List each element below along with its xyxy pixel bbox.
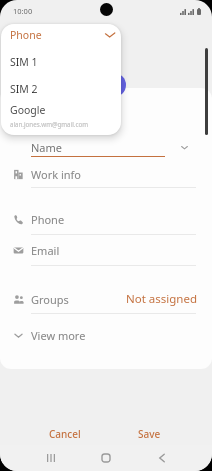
button[interactable]: Recents [40,447,62,469]
button[interactable]: Cancel [22,420,107,448]
button[interactable]: Name [0,139,212,155]
staticText: Email [31,243,60,258]
staticText: Work info [31,167,82,182]
button[interactable]: Home [95,447,117,469]
button[interactable]: View more [0,327,212,343]
staticText: alan.jones.wm@gmail.com [10,120,88,128]
button[interactable]: Groups [0,291,212,307]
staticText: Phone [10,28,42,42]
button[interactable]: Save [107,420,192,448]
staticText: Not assigned [126,291,198,307]
staticText: SIM 1 [10,55,38,69]
staticText: SIM 2 [10,82,38,96]
button[interactable]: Back [151,447,173,469]
button[interactable]: Email [0,242,212,258]
staticText: Google [10,103,46,117]
staticText: Groups [31,292,69,307]
button[interactable]: SIM 2 [1,81,121,97]
staticText: Cancel [49,427,81,441]
staticText: Save [138,427,161,441]
staticText: View more [31,328,86,343]
button[interactable]: Phone [1,27,121,43]
button[interactable]: Work info [0,166,212,182]
staticText: Phone [31,212,65,227]
button[interactable]: Expand name [176,139,192,155]
button[interactable]: Google [1,102,121,129]
button[interactable]: SIM 1 [1,54,121,70]
staticText: Name [31,140,63,155]
staticText: 10:00 [13,6,33,16]
button[interactable]: Phone [0,211,212,227]
